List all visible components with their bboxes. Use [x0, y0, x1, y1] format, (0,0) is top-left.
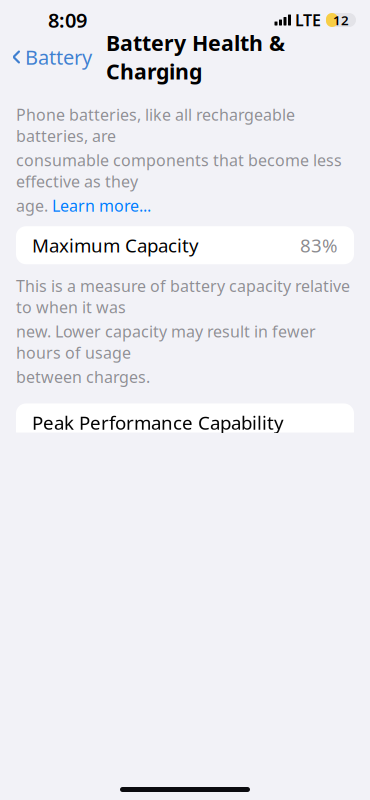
staticText: Phone batteries, like all rechargeable b…: [16, 104, 295, 146]
staticText: 8:09: [48, 7, 87, 33]
staticText: between charges.: [16, 366, 150, 387]
staticText: Peak Performance Capability: [32, 410, 284, 435]
staticText: LTE: [295, 9, 321, 31]
staticText: new. Lower capacity may result in fewer …: [16, 321, 316, 363]
staticText: consumable components that become less e…: [16, 149, 342, 192]
staticText: This is a measure of battery capacity re…: [16, 275, 350, 318]
staticText: 83%: [300, 233, 338, 258]
staticText: Battery Health & Charging: [106, 29, 285, 85]
button[interactable]: Learn more...: [52, 195, 151, 216]
staticText: age.: [16, 195, 52, 216]
staticText: Maximum Capacity: [32, 233, 199, 258]
button[interactable]: Maximum Capacity: [16, 226, 354, 264]
staticText: 12: [333, 11, 349, 29]
staticText: Battery: [25, 44, 92, 70]
button[interactable]: Battery: [0, 38, 92, 76]
staticText: Learn more...: [52, 195, 151, 216]
button[interactable]: Peak Performance Capability: [16, 403, 354, 441]
